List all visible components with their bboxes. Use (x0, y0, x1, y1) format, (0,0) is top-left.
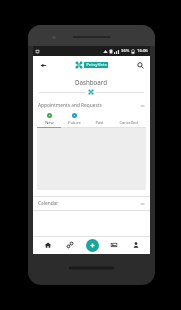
staticText: Future (68, 120, 81, 125)
button[interactable]: Past (88, 112, 110, 128)
staticText: Dashboard (75, 78, 108, 86)
staticText: 16:06 (137, 48, 148, 54)
staticText: New (45, 120, 54, 125)
button[interactable]: Add (86, 239, 99, 252)
button[interactable]: Links (59, 236, 81, 254)
staticText: Appointments and Requests (38, 102, 102, 109)
staticText: 36% (121, 48, 130, 54)
button[interactable]: Search (134, 59, 146, 71)
button[interactable]: Home (36, 236, 59, 254)
button[interactable]: Cancelled (110, 112, 146, 128)
staticText: Calendar (38, 200, 59, 207)
button[interactable]: Calendar (33, 197, 150, 210)
button[interactable]: Profile (125, 236, 147, 254)
staticText: Cancelled (119, 120, 138, 125)
button[interactable]: Gallery (103, 236, 125, 254)
staticText: PetsyVets (86, 62, 107, 68)
button[interactable]: Back (37, 59, 49, 71)
button[interactable]: Appointments and Requests (33, 99, 150, 112)
button[interactable]: New (37, 112, 61, 128)
staticText: Past (95, 120, 104, 125)
button[interactable]: Future (61, 112, 88, 128)
